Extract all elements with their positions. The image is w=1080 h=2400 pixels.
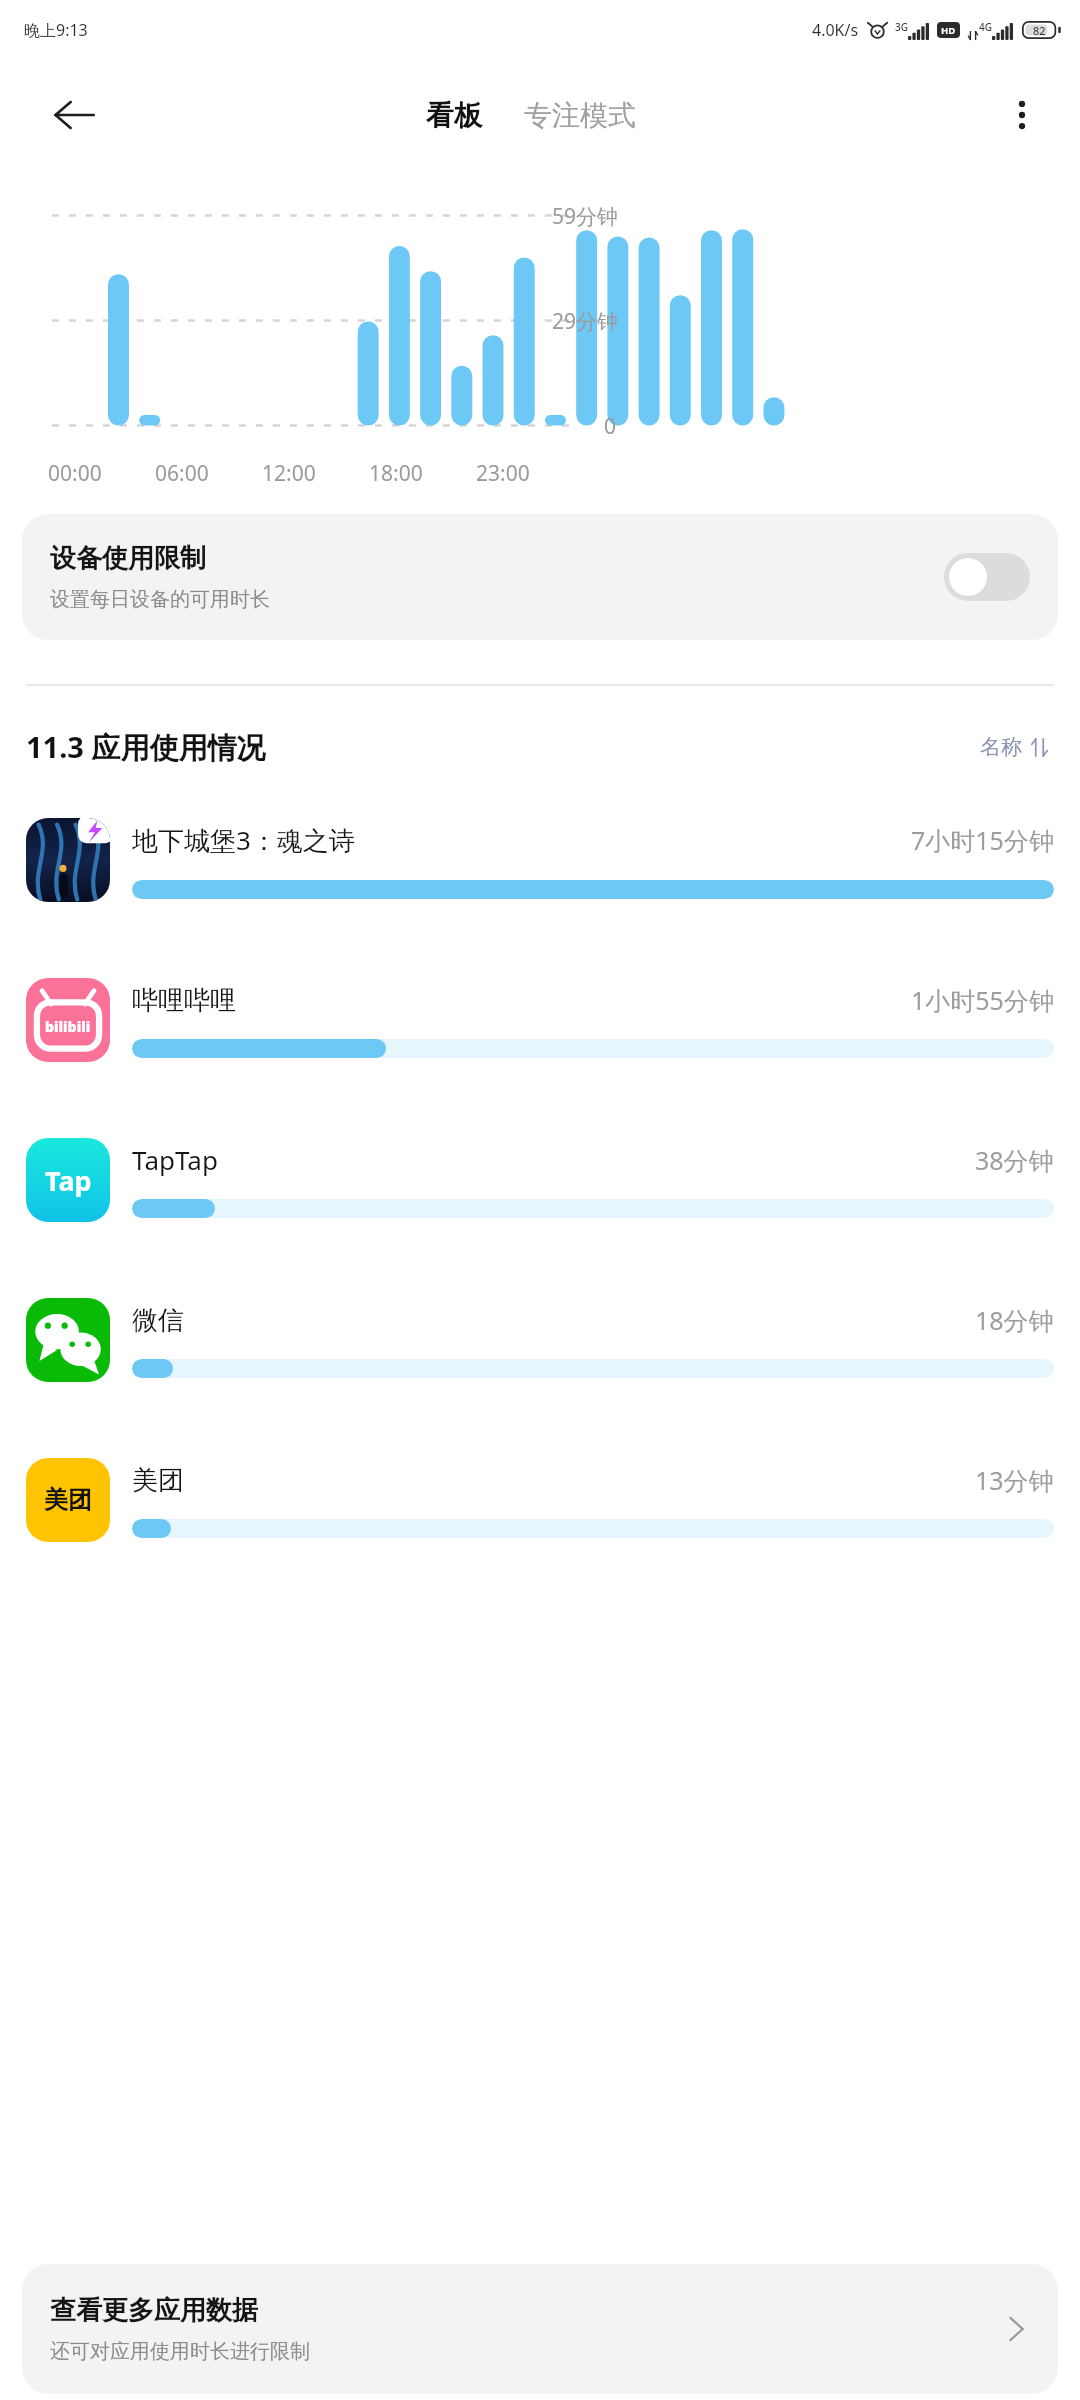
staticText: 设备使用限制: [50, 542, 206, 575]
staticText: bilibili: [45, 1017, 91, 1036]
staticText: 00:00: [48, 459, 102, 488]
button[interactable]: 看板: [418, 88, 490, 143]
button[interactable]: bilibili: [0, 940, 1080, 1100]
staticText: 18:00: [369, 459, 423, 488]
button[interactable]: More options: [994, 87, 1050, 143]
staticText: 地下城堡3：魂之诗: [132, 822, 355, 858]
button[interactable]: 专注模式: [516, 88, 644, 143]
staticText: TapTap: [132, 1142, 218, 1177]
staticText: 13分钟: [975, 1463, 1054, 1497]
staticText: 还可对应用使用时长进行限制: [50, 2339, 310, 2364]
staticText: 美团: [44, 1485, 92, 1515]
staticText: 29分钟: [552, 307, 619, 336]
staticText: 7小时15分钟: [911, 823, 1054, 857]
staticText: 12:00: [262, 459, 316, 488]
staticText: 专注模式: [524, 98, 636, 133]
button[interactable]: 微信: [0, 1260, 1080, 1420]
button[interactable]: Back: [44, 85, 104, 145]
staticText: 设置每日设备的可用时长: [50, 587, 270, 612]
button[interactable]: 查看更多应用数据: [22, 2264, 1058, 2394]
staticText: 0: [604, 412, 617, 441]
staticText: 查看更多应用数据: [50, 2294, 258, 2327]
button[interactable]: 设备使用限制: [22, 514, 1058, 640]
staticText: 82: [1033, 23, 1046, 38]
button[interactable]: Tap: [0, 1100, 1080, 1260]
staticText: 18分钟: [975, 1303, 1054, 1337]
staticText: Tap: [45, 1162, 92, 1199]
staticText: 哔哩哔哩: [132, 984, 236, 1017]
staticText: 1小时55分钟: [911, 983, 1054, 1017]
button[interactable]: 地下城堡3：魂之诗: [0, 780, 1080, 940]
staticText: 名称: [980, 734, 1022, 760]
staticText: 06:00: [155, 459, 209, 488]
button[interactable]: 美团: [0, 1420, 1080, 1580]
staticText: 59分钟: [552, 202, 619, 231]
staticText: 美团: [132, 1464, 184, 1497]
staticText: HD: [941, 24, 956, 37]
staticText: 11.3 应用使用情况: [26, 727, 266, 767]
staticText: 4G: [979, 20, 992, 34]
staticText: 微信: [132, 1304, 184, 1337]
staticText: 3G: [895, 20, 908, 34]
button[interactable]: Device usage limit toggle: [944, 553, 1030, 601]
staticText: 23:00: [476, 459, 530, 488]
staticText: 看板: [426, 98, 482, 133]
staticText: 晚上9:13: [24, 19, 88, 41]
button[interactable]: 名称: [974, 726, 1054, 768]
staticText: 4.0K/s: [812, 19, 859, 41]
staticText: 38分钟: [975, 1143, 1054, 1177]
